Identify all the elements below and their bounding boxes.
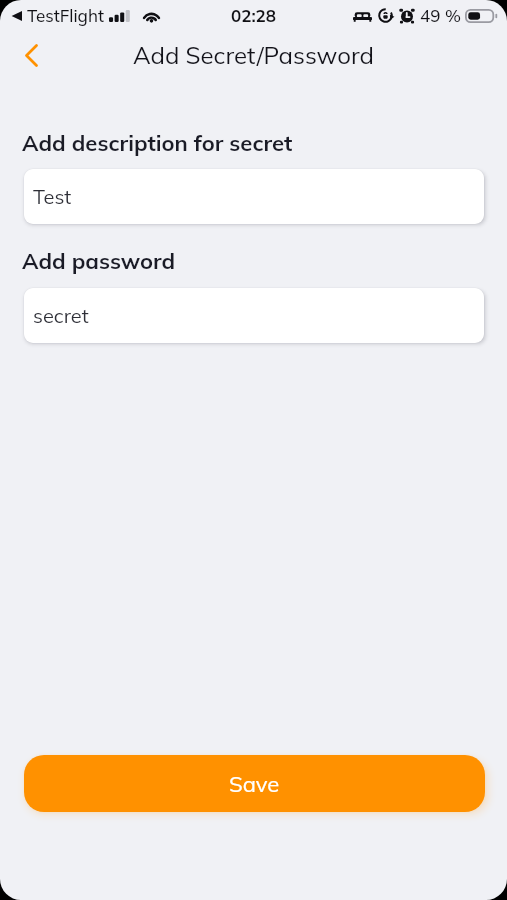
staticText: Add password: [22, 247, 176, 275]
staticText: TestFlight: [27, 5, 104, 26]
staticText: Save: [229, 770, 280, 798]
button[interactable]: Test: [24, 169, 484, 224]
staticText: 02:28: [231, 5, 277, 26]
button[interactable]: Save: [24, 755, 485, 812]
staticText: Add Secret/Password: [133, 40, 374, 70]
staticText: Add description for secret: [22, 129, 293, 157]
staticText: 49 %: [420, 5, 461, 26]
button[interactable]: Back: [8, 32, 54, 78]
staticText: secret: [33, 303, 89, 328]
staticText: Test: [33, 184, 72, 209]
button[interactable]: secret: [24, 288, 484, 343]
